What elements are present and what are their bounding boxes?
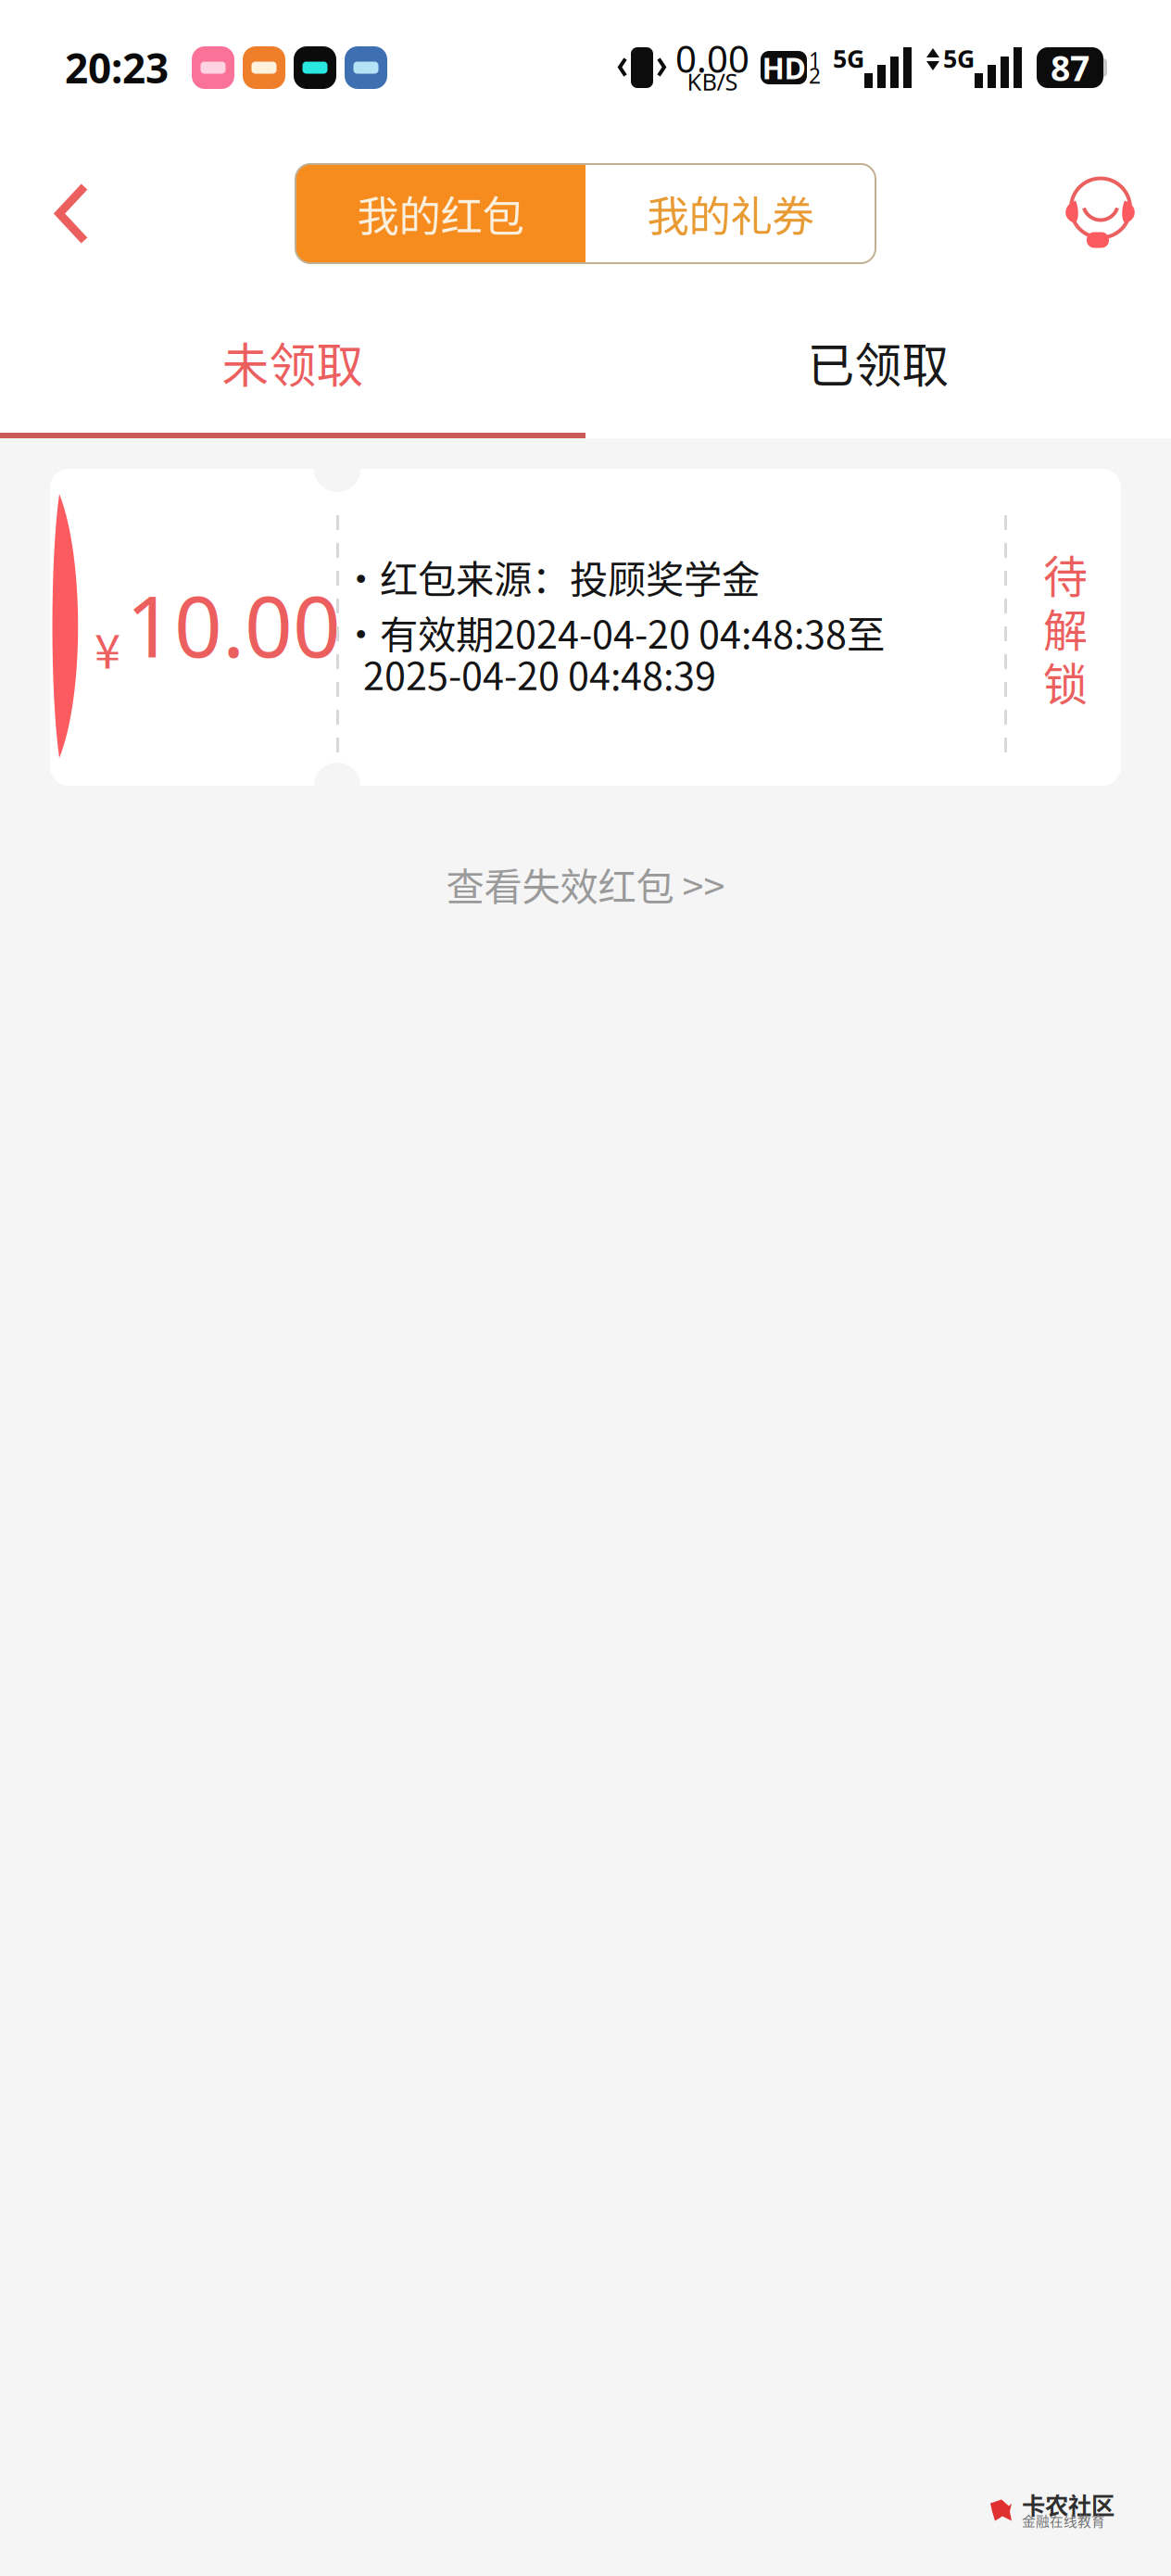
staticText: 0.00	[675, 33, 749, 84]
staticText: 未领取	[222, 328, 364, 396]
staticText: 5G	[833, 42, 864, 75]
staticText: 2025-04-20 04:48:39	[363, 646, 716, 701]
staticText: ·红包来源：投顾奖学金	[342, 549, 760, 604]
staticText: 锁	[1043, 649, 1088, 713]
button[interactable]: 我的礼券	[585, 164, 875, 263]
staticText: 解	[1043, 595, 1088, 659]
staticText: ·有效期2024-04-20 04:48:38至	[342, 604, 885, 660]
staticText: 20:23	[65, 40, 169, 95]
staticText: 金融在线教育	[1022, 2511, 1105, 2530]
button[interactable]: 已领取	[585, 292, 1171, 433]
staticText: 5G	[943, 42, 975, 75]
staticText: 查看失效红包 >>	[446, 856, 725, 912]
button[interactable]: 我的红包	[296, 164, 585, 263]
button[interactable]: 查看失效红包 >>	[446, 850, 725, 918]
staticText: HD	[762, 47, 806, 88]
button[interactable]: Customer service	[1047, 152, 1151, 275]
button[interactable]: Back	[20, 152, 124, 275]
staticText: 10.00	[126, 568, 341, 682]
staticText: 已领取	[807, 328, 949, 396]
staticText: 1	[809, 45, 821, 74]
staticText: 我的礼券	[647, 183, 814, 244]
staticText: 87	[1051, 44, 1089, 91]
button[interactable]: 未领取	[0, 292, 585, 433]
staticText: KB/S	[687, 66, 738, 97]
staticText: 我的红包	[357, 183, 524, 244]
staticText: ¥	[94, 614, 120, 682]
staticText: 卡农社区	[1022, 2487, 1114, 2521]
staticText: 2	[809, 61, 821, 90]
staticText: 待	[1043, 541, 1088, 606]
